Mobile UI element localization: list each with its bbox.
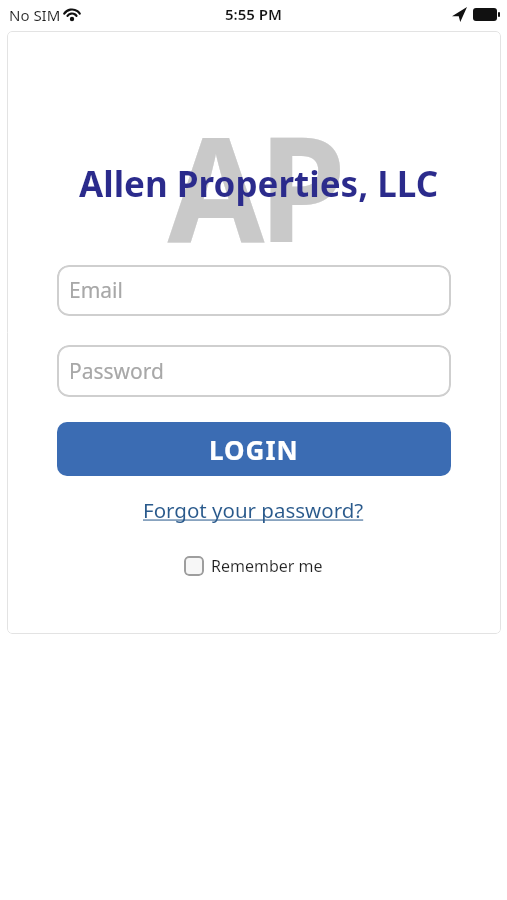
- staticText: Allen Properties, LLC: [79, 160, 439, 208]
- button[interactable]: Password: [57, 345, 451, 397]
- staticText: Remember me: [211, 555, 323, 577]
- button[interactable]: Email: [57, 265, 451, 316]
- staticText: 5:55 PM: [225, 4, 282, 24]
- staticText: LOGIN: [209, 432, 299, 467]
- staticText: AP: [168, 86, 340, 285]
- staticText: Email: [69, 276, 123, 305]
- button[interactable]: Remember me: [0, 555, 507, 577]
- staticText: Password: [69, 357, 164, 386]
- button[interactable]: LOGIN: [57, 422, 451, 476]
- button[interactable]: Forgot your password?: [143, 496, 364, 524]
- staticText: No SIM: [9, 5, 61, 25]
